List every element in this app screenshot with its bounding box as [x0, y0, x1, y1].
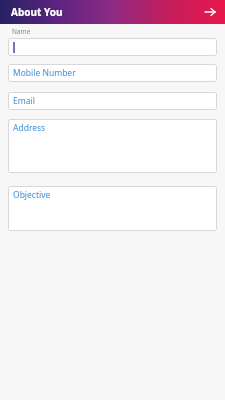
button[interactable]: Next — [201, 3, 219, 21]
button[interactable]: Objective — [8, 186, 217, 231]
staticText: Mobile Number — [13, 67, 76, 79]
button[interactable] — [8, 38, 217, 56]
staticText: Address — [13, 122, 46, 134]
staticText: Name — [12, 27, 31, 36]
button[interactable]: Address — [8, 119, 217, 173]
staticText: About You — [11, 5, 63, 19]
staticText: Email — [13, 95, 35, 107]
staticText: Objective — [13, 189, 51, 201]
button[interactable]: Email — [8, 92, 217, 110]
button[interactable]: Mobile Number — [8, 64, 217, 82]
